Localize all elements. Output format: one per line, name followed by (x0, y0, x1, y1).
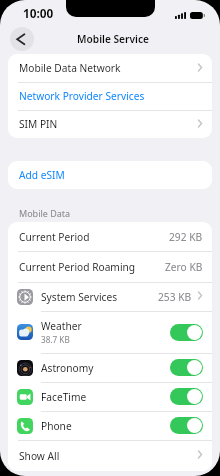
button[interactable]: FaceTime (8, 382, 212, 411)
staticText: FaceTime (41, 390, 87, 404)
button[interactable]: Toggle FaceTime (170, 388, 203, 405)
button[interactable]: System Services (8, 282, 212, 311)
button[interactable]: Phone (8, 411, 212, 440)
button[interactable]: Network Provider Services (8, 82, 212, 110)
staticText: Zero KB (165, 260, 203, 274)
button[interactable]: Current Period Roaming (8, 251, 212, 282)
staticText: 10:00 (23, 5, 54, 21)
button[interactable]: Toggle Astronomy (170, 359, 203, 376)
staticText: 292 KB (169, 230, 203, 244)
staticText: Current Period Roaming (19, 260, 136, 274)
button[interactable]: Back (10, 27, 34, 51)
button[interactable]: Show All (8, 440, 212, 471)
staticText: Weather (41, 319, 82, 333)
staticText: SIM PIN (19, 117, 58, 131)
staticText: 253 KB (158, 290, 192, 304)
staticText: Mobile Data Network (19, 61, 121, 75)
staticText: Mobile Service (77, 32, 150, 46)
button[interactable]: Astronomy (8, 353, 212, 382)
staticText: Astronomy (41, 361, 94, 375)
staticText: 38.7 KB (41, 334, 70, 345)
staticText: Network Provider Services (19, 89, 145, 103)
button[interactable]: Weather (8, 311, 212, 353)
button[interactable]: Current Period (8, 222, 212, 251)
staticText: Current Period (19, 230, 90, 244)
button[interactable]: Toggle Weather (170, 324, 203, 341)
staticText: Mobile Data (19, 207, 71, 219)
staticText: Add eSIM (19, 168, 65, 182)
staticText: Phone (41, 419, 72, 433)
button[interactable]: Toggle Phone (170, 417, 203, 434)
button[interactable]: SIM PIN (8, 110, 212, 138)
button[interactable]: Mobile Data Network (8, 54, 212, 82)
staticText: System Services (41, 290, 118, 304)
button[interactable]: Add eSIM (8, 161, 212, 189)
staticText: Show All (19, 449, 60, 463)
